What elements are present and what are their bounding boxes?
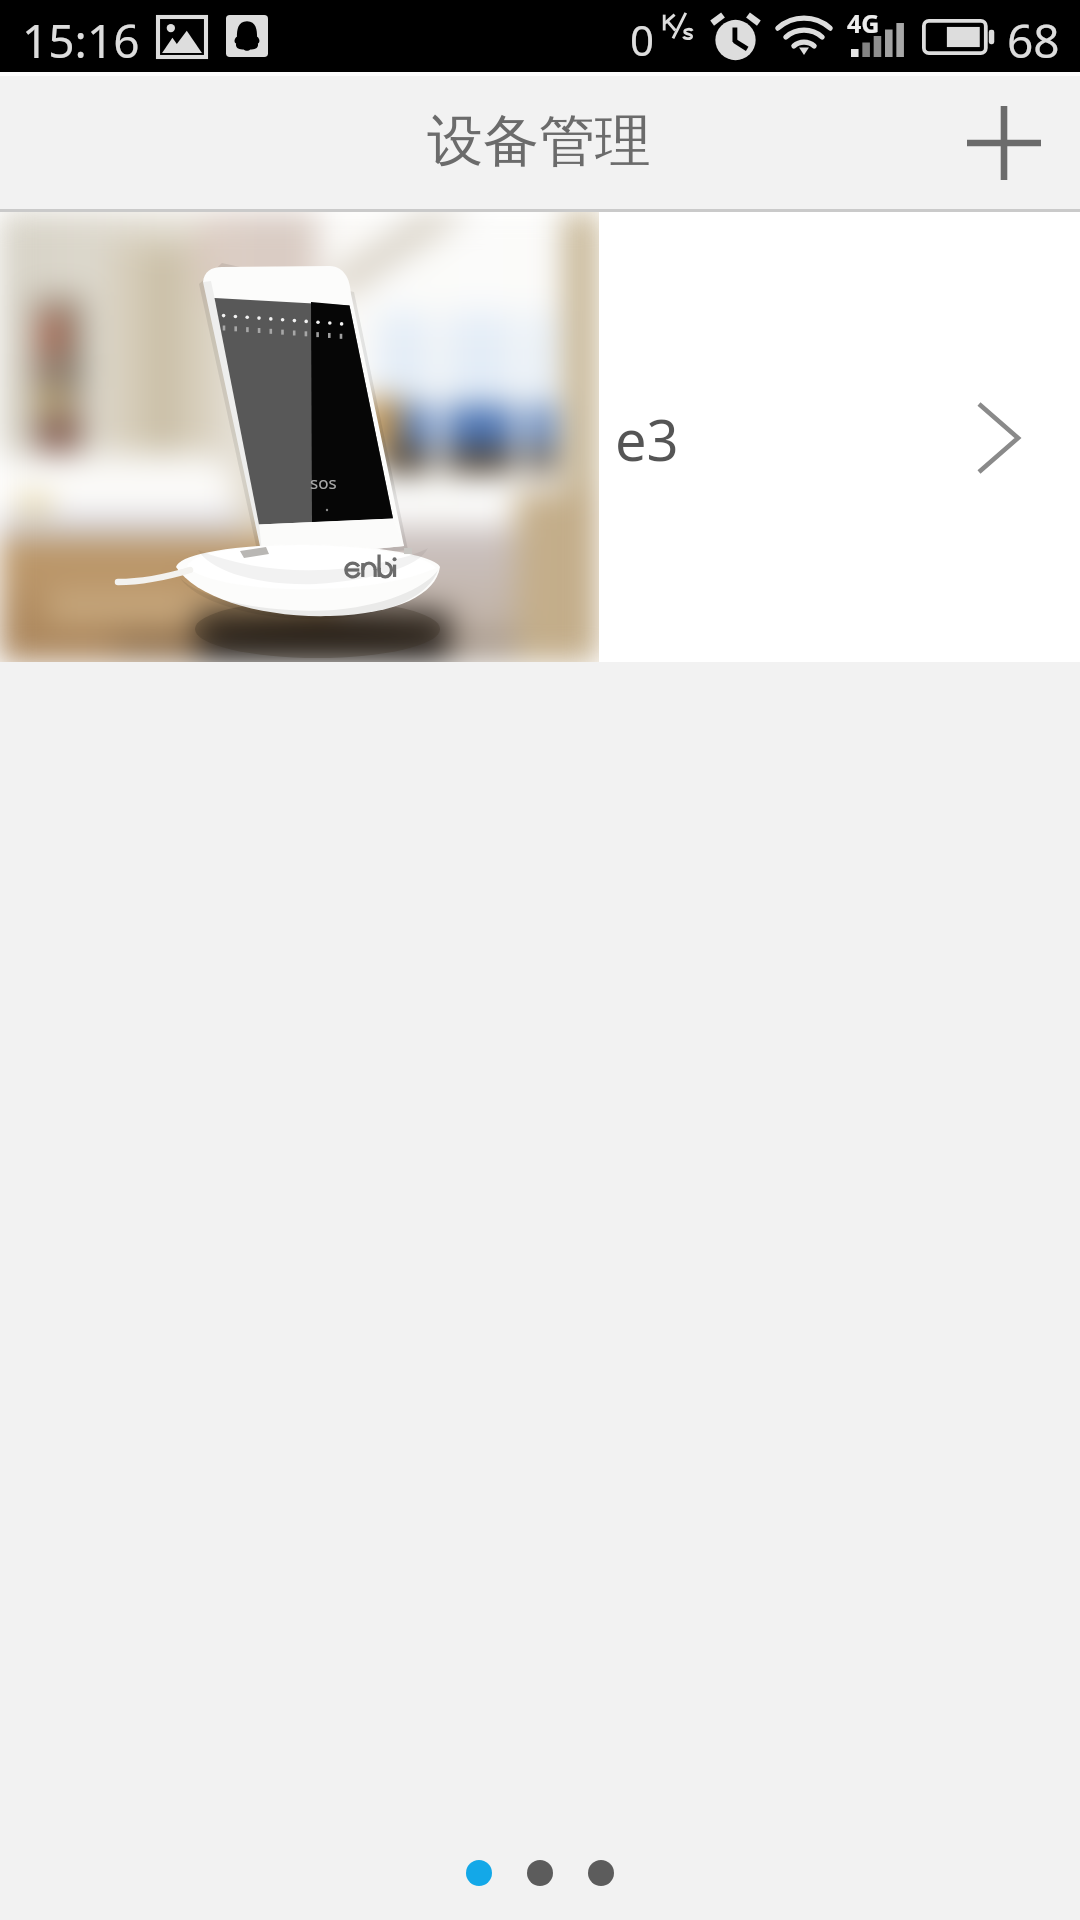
button[interactable]: Add device: [930, 72, 1070, 212]
staticText: 15:16: [22, 9, 140, 72]
staticText: sos: [310, 471, 337, 494]
button[interactable]: Page 1: [466, 1860, 492, 1886]
button[interactable]: Page 3: [588, 1860, 614, 1886]
staticText: 设备管理: [427, 106, 651, 177]
staticText: 68: [1007, 9, 1060, 72]
staticText: 0: [630, 11, 655, 68]
button[interactable]: Page 2: [527, 1860, 553, 1886]
staticText: e3: [615, 401, 679, 477]
staticText: 4G: [847, 6, 880, 40]
button[interactable]: sos: [0, 212, 1080, 662]
